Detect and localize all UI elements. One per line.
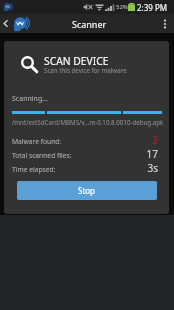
button[interactable]: Navigate up: [0, 14, 34, 33]
staticText: Scan this device for malware: [44, 66, 127, 74]
staticText: Time elapsed:: [12, 165, 56, 174]
staticText: /mnt/extSdCard/MBMS/v...re-0.10.8.0010-d…: [12, 118, 166, 126]
button[interactable]: More options: [156, 14, 174, 33]
staticText: 17: [146, 147, 158, 161]
staticText: 3s: [147, 161, 158, 175]
staticText: 2:39 PM: [137, 2, 168, 13]
button[interactable]: Stop: [17, 181, 157, 200]
staticText: Total scanned files:: [12, 151, 72, 160]
staticText: SCAN DEVICE: [44, 54, 109, 68]
staticText: Scanning...: [12, 94, 48, 104]
staticText: Malware found:: [12, 137, 62, 146]
staticText: Stop: [78, 185, 96, 196]
staticText: 2: [152, 133, 158, 147]
staticText: Scanner: [72, 18, 107, 30]
staticText: 52%: [116, 3, 128, 11]
